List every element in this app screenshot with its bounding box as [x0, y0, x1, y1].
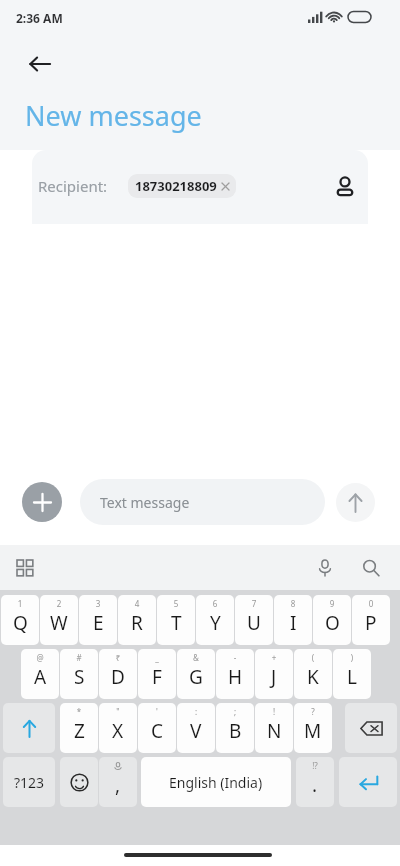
staticText: #	[60, 652, 98, 663]
button[interactable]: 1	[1, 595, 39, 645]
staticText: V	[190, 718, 202, 744]
staticText: K	[307, 664, 319, 690]
staticText: !	[255, 706, 293, 717]
staticText: -	[216, 652, 254, 663]
button[interactable]	[3, 703, 55, 753]
staticText: @	[21, 652, 59, 663]
staticText: 9	[313, 598, 351, 609]
staticText: ,	[115, 772, 121, 798]
staticText: 3	[79, 598, 117, 609]
button[interactable]: 6	[196, 595, 234, 645]
staticText: "	[99, 706, 137, 717]
staticText: Y	[210, 610, 221, 636]
staticText: B	[229, 718, 242, 744]
staticText: _	[138, 652, 176, 663]
staticText: !?	[296, 760, 334, 771]
staticText: 6	[196, 598, 234, 609]
staticText: C	[151, 718, 164, 744]
button[interactable]: !	[255, 703, 293, 753]
staticText: E	[93, 610, 104, 636]
button[interactable]: 3	[79, 595, 117, 645]
staticText: U	[247, 610, 261, 636]
button[interactable]: 9	[313, 595, 351, 645]
button[interactable]: Attach	[22, 482, 62, 522]
staticText: D	[111, 664, 125, 690]
staticText: W	[50, 610, 68, 636]
button[interactable]: 0	[352, 595, 390, 645]
staticText: T	[171, 610, 182, 636]
button[interactable]: 5	[157, 595, 195, 645]
staticText: )	[333, 652, 371, 663]
button[interactable]	[339, 757, 397, 807]
button[interactable]: (	[294, 649, 332, 699]
staticText: Z	[74, 718, 85, 744]
staticText: '	[138, 706, 176, 717]
staticText: 0	[352, 598, 390, 609]
button[interactable]: Keyboard options	[8, 551, 42, 585]
staticText: X	[112, 718, 124, 744]
button[interactable]: '	[138, 703, 176, 753]
staticText: F	[152, 664, 162, 690]
staticText: 4	[118, 598, 156, 609]
staticText: Text message	[100, 493, 190, 512]
button[interactable]: Send	[336, 483, 375, 522]
staticText: New message	[25, 97, 202, 134]
staticText: G	[189, 664, 203, 690]
button[interactable]: &	[177, 649, 215, 699]
button[interactable]: ;	[216, 703, 254, 753]
staticText: L	[347, 664, 357, 690]
button[interactable]: !?	[296, 757, 334, 807]
staticText: 2:36 AM	[16, 10, 63, 26]
button[interactable]: Search	[354, 551, 388, 585]
button[interactable]: Back	[18, 42, 62, 86]
staticText: +	[255, 652, 293, 663]
button[interactable]: ,	[99, 757, 137, 807]
staticText: O	[325, 610, 340, 636]
button[interactable]: 18730218809	[128, 174, 236, 198]
button[interactable]: 2	[40, 595, 78, 645]
staticText: Q	[13, 610, 28, 636]
button[interactable]: )	[333, 649, 371, 699]
button[interactable]: Text message	[80, 479, 325, 525]
staticText: ₹	[99, 652, 137, 663]
staticText: M	[304, 718, 322, 744]
button[interactable]: +	[255, 649, 293, 699]
staticText: English (India)	[169, 773, 263, 792]
button[interactable]: *	[60, 703, 98, 753]
staticText: &	[177, 652, 215, 663]
button[interactable]: :	[177, 703, 215, 753]
button[interactable]: 4	[118, 595, 156, 645]
button[interactable]: _	[138, 649, 176, 699]
staticText: 5	[157, 598, 195, 609]
button[interactable]	[345, 703, 397, 753]
button[interactable]: Recipient:	[32, 150, 368, 224]
staticText: ?123	[14, 773, 45, 792]
button[interactable]: "	[99, 703, 137, 753]
staticText: *	[60, 706, 98, 717]
staticText: J	[271, 664, 277, 690]
staticText: 7	[235, 598, 273, 609]
button[interactable]: @	[21, 649, 59, 699]
staticText: S	[74, 664, 85, 690]
staticText: :	[177, 706, 215, 717]
button[interactable]	[60, 757, 98, 807]
staticText: .	[312, 772, 318, 798]
staticText: R	[131, 610, 143, 636]
button[interactable]: Add contact	[324, 166, 366, 208]
button[interactable]: ?	[294, 703, 332, 753]
button[interactable]: ₹	[99, 649, 137, 699]
button[interactable]: Voice input	[308, 551, 342, 585]
button[interactable]: 8	[274, 595, 312, 645]
staticText: N	[267, 718, 282, 744]
button[interactable]: ?123	[3, 757, 55, 807]
staticText: ;	[216, 706, 254, 717]
staticText: 2	[40, 598, 78, 609]
staticText: 18730218809	[135, 177, 217, 195]
staticText: I	[290, 610, 297, 636]
button[interactable]: English (India)	[141, 757, 291, 807]
staticText: A	[34, 664, 47, 690]
button[interactable]: 7	[235, 595, 273, 645]
staticText: ?	[294, 706, 332, 717]
button[interactable]: -	[216, 649, 254, 699]
button[interactable]: #	[60, 649, 98, 699]
